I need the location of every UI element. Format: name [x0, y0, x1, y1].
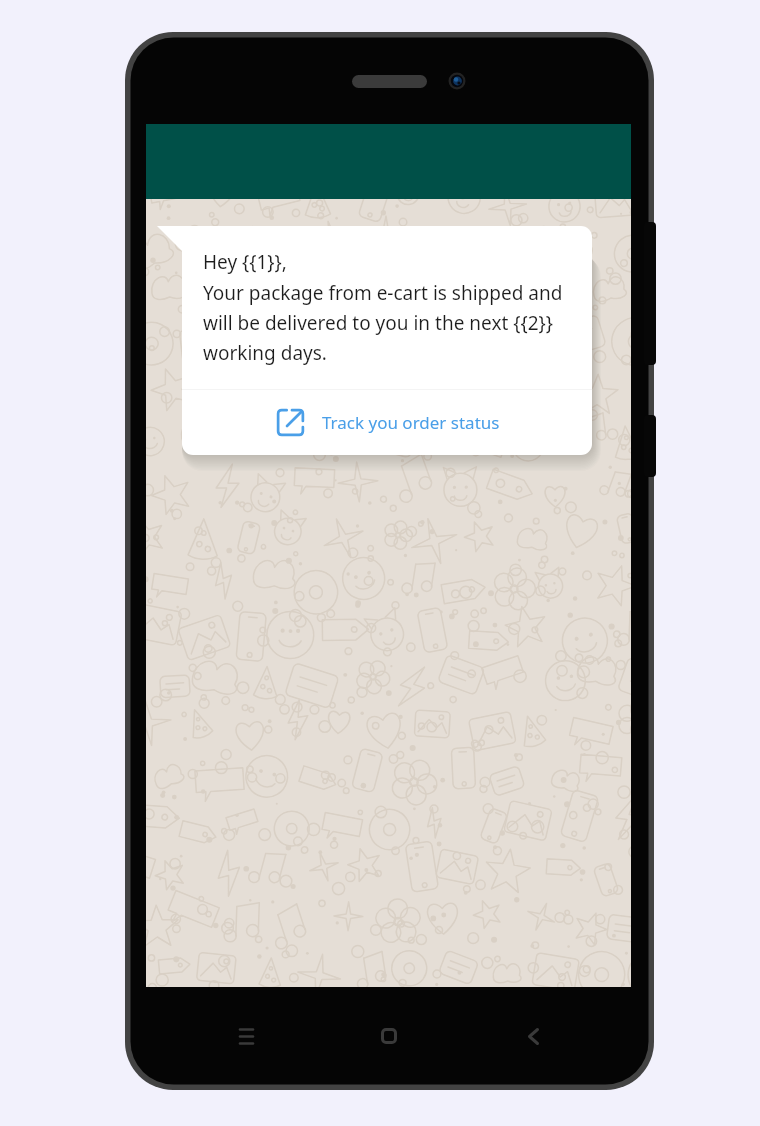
staticText: Hey {{1}}, Your package from e-cart is s… [203, 249, 576, 365]
button[interactable]: Track you order status [182, 390, 592, 455]
button[interactable]: Recent apps [225, 1014, 269, 1058]
button[interactable]: Hey {{1}}, Your package from e-cart is s… [182, 226, 592, 455]
button[interactable]: Home [367, 1014, 411, 1058]
button[interactable]: Back [511, 1014, 555, 1058]
staticText: Track you order status [322, 411, 500, 434]
